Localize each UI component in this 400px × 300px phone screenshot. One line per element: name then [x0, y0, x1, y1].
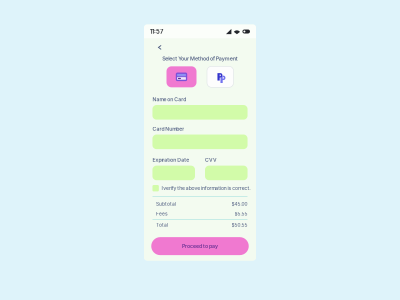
staticText: Subtotal — [156, 201, 176, 207]
staticText: Name on Card — [152, 96, 186, 102]
button[interactable]: I verify the above information is correc… — [152, 185, 247, 191]
staticText: Fees — [156, 211, 168, 217]
staticText: Proceed to pay — [182, 243, 218, 249]
staticText: Card Number — [152, 126, 184, 132]
staticText: I verify the above information is correc… — [161, 185, 250, 191]
button[interactable]: Pay with credit card — [166, 66, 196, 87]
button[interactable]: Proceed to pay — [151, 237, 249, 255]
button[interactable]: Pay with PayPal — [207, 66, 233, 87]
staticText: $45.00 — [231, 201, 247, 207]
staticText: Expiration Date — [152, 157, 189, 163]
button[interactable]: Back — [155, 42, 165, 53]
staticText: $50.55 — [231, 222, 247, 228]
staticText: Total — [156, 222, 168, 228]
staticText: Select Your Method of Payment — [162, 55, 238, 62]
staticText: $5.55 — [234, 211, 247, 217]
staticText: CVV — [205, 157, 217, 163]
staticText: 11:57 — [150, 28, 163, 35]
